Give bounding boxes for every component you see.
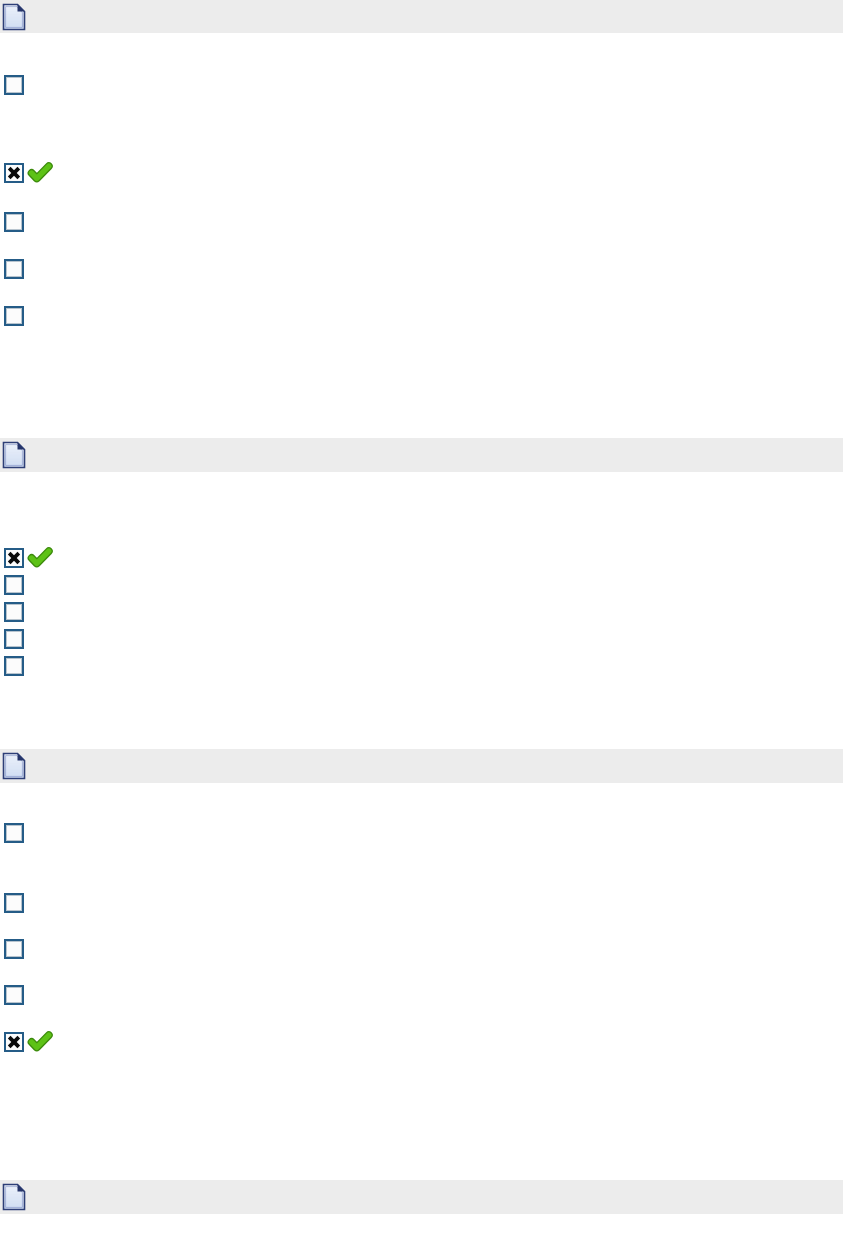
button[interactable]: Unchecked option [0, 73, 843, 97]
button[interactable]: Unchecked option [0, 983, 843, 1007]
button[interactable]: Section header [0, 749, 843, 783]
button[interactable]: Unchecked option [0, 573, 843, 597]
button[interactable]: Unchecked option [0, 210, 843, 234]
button[interactable]: Checked option [0, 161, 843, 185]
button[interactable]: Unchecked option [0, 937, 843, 961]
button[interactable]: Unchecked option [0, 627, 843, 651]
button[interactable]: Unchecked option [0, 257, 843, 281]
button[interactable]: Section header [0, 438, 843, 472]
button[interactable]: Unchecked option [0, 600, 843, 624]
button[interactable]: Unchecked option [0, 891, 843, 915]
button[interactable]: Section header [0, 0, 843, 33]
button[interactable]: Unchecked option [0, 304, 843, 328]
button[interactable]: Checked option [0, 546, 843, 570]
button[interactable]: Checked option [0, 1030, 843, 1054]
button[interactable]: Section header [0, 1180, 843, 1214]
button[interactable]: Unchecked option [0, 821, 843, 845]
button[interactable]: Unchecked option [0, 654, 843, 678]
